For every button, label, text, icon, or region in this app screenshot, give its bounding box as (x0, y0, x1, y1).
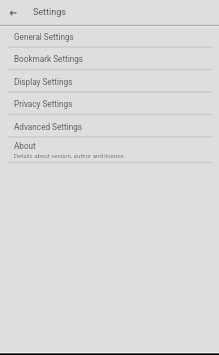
staticText: Bookmark Settings (14, 54, 84, 64)
button[interactable]: Bookmark Settings (0, 47, 219, 70)
staticText: Display Settings (14, 77, 73, 87)
button[interactable]: General Settings (0, 26, 219, 47)
button[interactable]: Navigate up (0, 0, 26, 24)
button[interactable]: About (0, 137, 219, 163)
staticText: Advanced Settings (14, 122, 83, 132)
staticText: About (14, 141, 36, 151)
button[interactable]: Display Settings (0, 70, 219, 93)
staticText: Details about version, author and licens… (14, 152, 126, 159)
staticText: Privacy Settings (14, 99, 73, 109)
button[interactable]: Privacy Settings (0, 92, 219, 115)
staticText: General Settings (14, 32, 74, 42)
button[interactable]: Advanced Settings (0, 115, 219, 138)
staticText: Settings (33, 7, 66, 18)
